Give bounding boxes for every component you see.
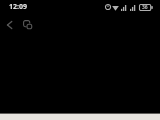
button[interactable]: Multi window — [20, 17, 35, 32]
staticText: 36 — [142, 4, 148, 11]
staticText: 12:09 — [9, 2, 27, 12]
button[interactable]: Back — [2, 17, 17, 32]
